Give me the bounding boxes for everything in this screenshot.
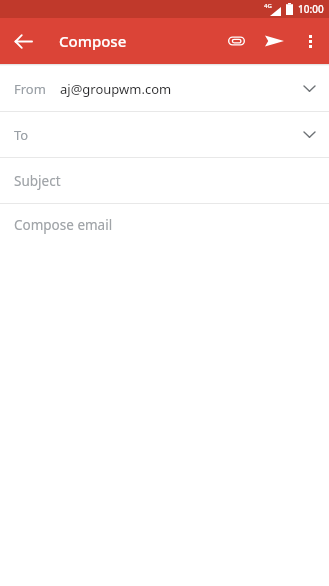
button[interactable]: Send [255,22,293,60]
button[interactable]: Attach file [217,22,255,60]
staticText: Compose email [14,216,113,234]
staticText: 4G [264,2,272,10]
button[interactable]: To [0,112,329,157]
staticText: aj@groupwm.com [60,80,304,98]
button[interactable]: Subject [0,158,329,203]
staticText: Subject [14,172,61,190]
staticText: 10:00 [298,2,324,16]
staticText: To [14,126,304,144]
button[interactable]: Compose email [0,204,329,246]
staticText: Compose [59,31,127,51]
staticText: From [14,80,46,98]
button[interactable]: Back [4,22,42,60]
button[interactable]: More options [293,24,327,58]
button[interactable]: From [0,66,329,111]
